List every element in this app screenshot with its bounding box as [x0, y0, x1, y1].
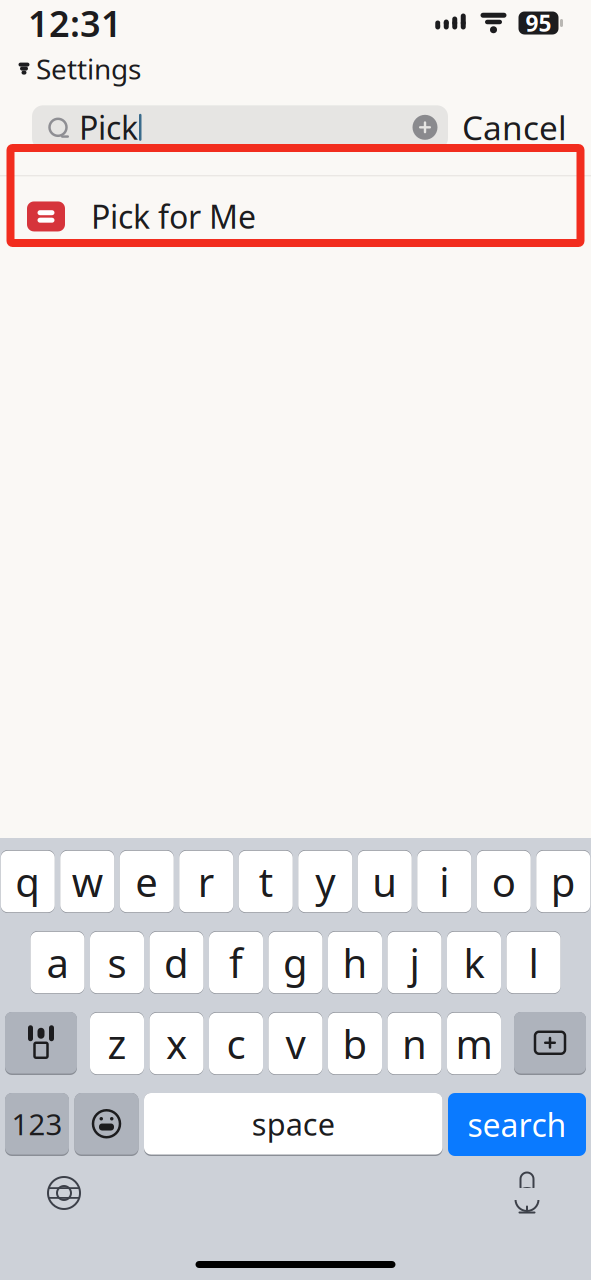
- staticText: c: [226, 1017, 245, 1070]
- staticText: z: [107, 1017, 126, 1070]
- button[interactable]: Next keyboard: [46, 1175, 82, 1211]
- staticText: 95: [525, 8, 551, 38]
- button[interactable]: a: [30, 931, 84, 994]
- staticText: 12:31: [28, 0, 122, 47]
- staticText: h: [342, 936, 367, 989]
- staticText: w: [72, 855, 103, 908]
- button[interactable]: e: [120, 850, 174, 913]
- button[interactable]: p: [536, 850, 590, 913]
- staticText: f: [229, 936, 243, 989]
- staticText: z: [107, 1017, 126, 1070]
- button[interactable]: v: [268, 1012, 322, 1075]
- staticText: s: [107, 936, 126, 989]
- button[interactable]: i: [417, 850, 471, 913]
- staticText: y: [315, 855, 335, 908]
- staticText: n: [402, 1017, 427, 1070]
- staticText: 123: [11, 1104, 62, 1143]
- staticText: search: [467, 1103, 566, 1146]
- button[interactable]: r: [179, 850, 233, 913]
- staticText: b: [342, 1017, 367, 1070]
- staticText: q: [15, 855, 40, 908]
- button[interactable]: j: [387, 931, 441, 994]
- staticText: m: [455, 1017, 492, 1070]
- button[interactable]: Dictation: [509, 1172, 545, 1214]
- staticText: Cancel: [462, 105, 567, 149]
- button[interactable]: Shift: [5, 1012, 77, 1075]
- button[interactable]: Emoji: [74, 1093, 138, 1156]
- staticText: f: [229, 936, 243, 989]
- staticText: j: [409, 936, 419, 989]
- staticText: u: [372, 855, 397, 908]
- button[interactable]: g: [268, 931, 322, 994]
- staticText: j: [409, 936, 419, 989]
- button[interactable]: space: [144, 1093, 442, 1156]
- staticText: t: [259, 855, 273, 908]
- staticText: l: [528, 936, 538, 989]
- staticText: t: [259, 855, 273, 908]
- staticText: Settings: [36, 50, 141, 87]
- staticText: y: [315, 855, 335, 908]
- button[interactable]: w: [60, 850, 114, 913]
- button[interactable]: h: [328, 931, 382, 994]
- staticText: m: [455, 1017, 492, 1070]
- staticText: n: [402, 1017, 427, 1070]
- button[interactable]: Settings: [18, 48, 141, 89]
- button[interactable]: z: [90, 1012, 144, 1075]
- staticText: l: [528, 936, 538, 989]
- staticText: k: [463, 936, 484, 989]
- staticText: g: [283, 936, 308, 989]
- staticText: i: [439, 855, 449, 908]
- button[interactable]: c: [209, 1012, 263, 1075]
- button[interactable]: b: [328, 1012, 382, 1075]
- staticText: x: [166, 1017, 187, 1070]
- button[interactable]: o: [477, 850, 531, 913]
- button[interactable]: m: [447, 1012, 501, 1075]
- staticText: Pick for Me: [91, 195, 256, 238]
- staticText: r: [198, 855, 215, 908]
- staticText: o: [492, 855, 516, 908]
- button[interactable]: l: [506, 931, 560, 994]
- button[interactable]: s: [90, 931, 144, 994]
- button[interactable]: t: [239, 850, 293, 913]
- button[interactable]: y: [298, 850, 352, 913]
- button[interactable]: n: [387, 1012, 441, 1075]
- button[interactable]: f: [209, 931, 263, 994]
- staticText: d: [164, 936, 189, 989]
- staticText: e: [135, 855, 158, 908]
- staticText: d: [164, 936, 189, 989]
- staticText: v: [285, 1017, 305, 1070]
- staticText: h: [342, 936, 367, 989]
- button[interactable]: k: [447, 931, 501, 994]
- staticText: o: [492, 855, 516, 908]
- button[interactable]: Numbers: [5, 1093, 69, 1156]
- staticText: v: [285, 1017, 305, 1070]
- staticText: i: [439, 855, 449, 908]
- staticText: e: [135, 855, 158, 908]
- button[interactable]: Cancel: [462, 101, 567, 153]
- button[interactable]: u: [358, 850, 412, 913]
- staticText: s: [107, 936, 126, 989]
- staticText: a: [46, 936, 68, 989]
- staticText: a: [46, 936, 68, 989]
- staticText: Pick: [79, 106, 138, 149]
- button[interactable]: d: [149, 931, 203, 994]
- button[interactable]: search: [448, 1093, 586, 1156]
- staticText: w: [72, 855, 103, 908]
- staticText: x: [166, 1017, 187, 1070]
- staticText: r: [198, 855, 215, 908]
- button[interactable]: Delete: [514, 1012, 586, 1075]
- staticText: g: [283, 936, 308, 989]
- button[interactable]: Clear text: [408, 110, 442, 144]
- staticText: space: [252, 1103, 335, 1144]
- button[interactable]: Pick for Me: [0, 176, 591, 256]
- staticText: b: [342, 1017, 367, 1070]
- staticText: c: [226, 1017, 245, 1070]
- staticText: p: [551, 855, 576, 908]
- button[interactable]: q: [1, 850, 55, 913]
- staticText: p: [551, 855, 576, 908]
- staticText: q: [15, 855, 40, 908]
- staticText: u: [372, 855, 397, 908]
- staticText: k: [463, 936, 484, 989]
- button[interactable]: x: [149, 1012, 203, 1075]
